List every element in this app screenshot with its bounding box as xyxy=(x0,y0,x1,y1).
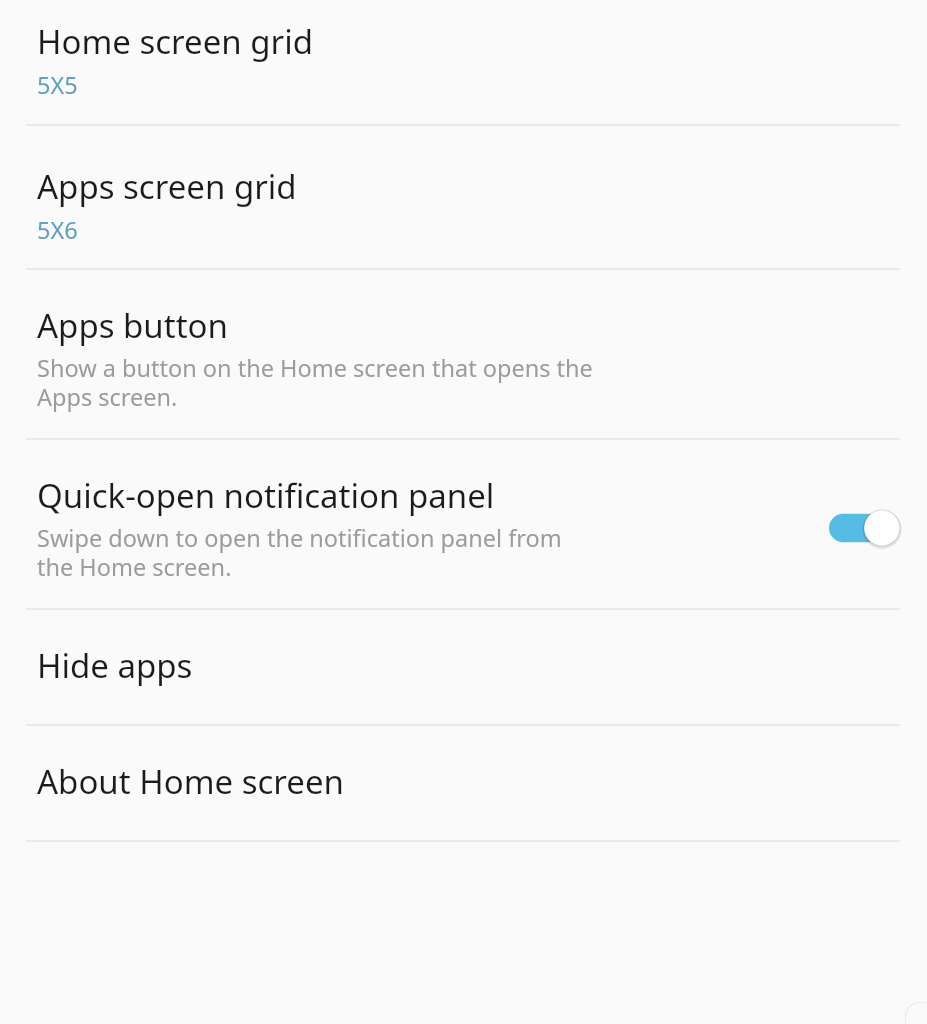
button[interactable]: Hide apps xyxy=(0,610,927,724)
staticText: 5X5 xyxy=(37,69,78,101)
staticText: Swipe down to open the notification pane… xyxy=(37,522,562,583)
button[interactable]: About Home screen xyxy=(0,726,927,840)
button[interactable]: Home screen grid xyxy=(0,0,927,124)
staticText: About Home screen xyxy=(37,759,344,804)
button[interactable]: Apps screen grid xyxy=(0,126,927,268)
staticText: Apps button xyxy=(37,303,228,348)
button[interactable]: Apps button xyxy=(0,270,927,438)
staticText: Apps screen grid xyxy=(37,164,297,209)
staticText: Home screen grid xyxy=(37,19,314,64)
staticText: Hide apps xyxy=(37,643,193,688)
staticText: 5X6 xyxy=(37,214,78,246)
staticText: Show a button on the Home screen that op… xyxy=(37,352,593,413)
staticText: Quick-open notification panel xyxy=(37,473,495,518)
button[interactable]: Quick-open notification panel toggle xyxy=(829,508,901,548)
button[interactable]: Scroll indicator xyxy=(905,1002,927,1024)
button[interactable]: Quick-open notification panel xyxy=(0,440,927,608)
